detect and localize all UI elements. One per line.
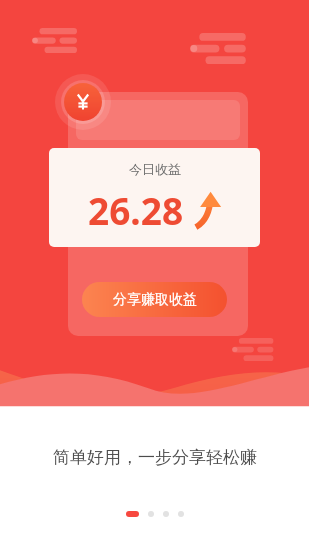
button[interactable] — [126, 511, 139, 517]
staticText: 26.28 — [88, 185, 184, 235]
staticText: 今日收益 — [129, 161, 181, 177]
staticText: 分享赚取收益 — [113, 291, 197, 309]
button[interactable] — [178, 511, 184, 517]
button[interactable]: 分享赚取收益 — [82, 282, 227, 317]
button[interactable]: 今日收益 — [49, 148, 260, 247]
button[interactable]: Earnings coin — [55, 74, 111, 130]
button[interactable] — [163, 511, 169, 517]
staticText: 简单好用，一步分享轻松赚 — [53, 447, 257, 468]
button[interactable] — [148, 511, 154, 517]
